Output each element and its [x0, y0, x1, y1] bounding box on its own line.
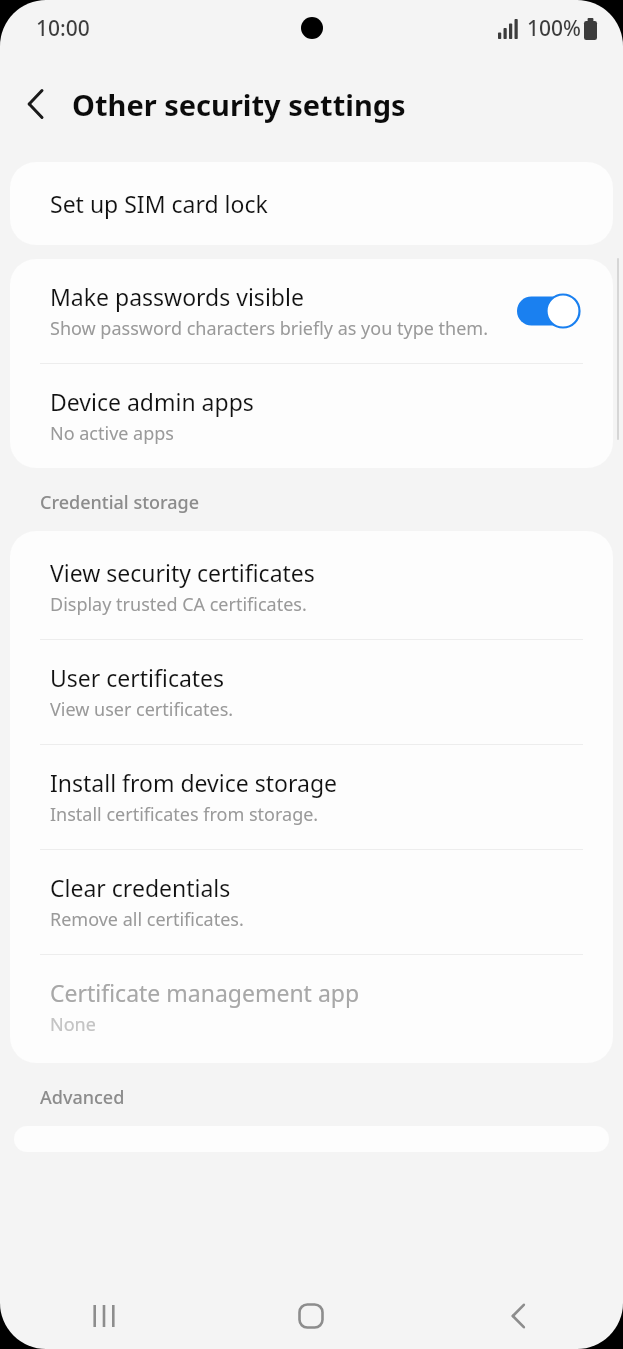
- staticText: Install certificates from storage.: [50, 802, 319, 827]
- staticText: None: [50, 1012, 96, 1037]
- staticText: Device admin apps: [50, 386, 254, 417]
- button[interactable]: Make passwords visible: [10, 259, 613, 363]
- staticText: 10:00: [36, 14, 90, 43]
- button[interactable]: Back: [415, 1283, 623, 1349]
- staticText: Remove all certificates.: [50, 907, 244, 932]
- staticText: Clear credentials: [50, 872, 231, 903]
- staticText: Set up SIM card lock: [50, 188, 268, 219]
- button[interactable]: View security certificates: [10, 531, 613, 639]
- button[interactable]: Install from device storage: [10, 745, 613, 849]
- staticText: Credential storage: [40, 490, 200, 515]
- staticText: Advanced: [40, 1085, 125, 1110]
- staticText: Certificate management app: [50, 977, 360, 1008]
- staticText: User certificates: [50, 662, 225, 693]
- button[interactable]: Recent apps: [0, 1283, 207, 1349]
- staticText: Other security settings: [72, 85, 406, 124]
- button[interactable]: Make passwords visible: [517, 293, 581, 329]
- staticText: View security certificates: [50, 557, 315, 588]
- button[interactable]: Clear credentials: [10, 850, 613, 954]
- staticText: Show password characters briefly as you …: [50, 316, 488, 341]
- button[interactable]: Navigate up: [0, 68, 72, 140]
- staticText: View user certificates.: [50, 697, 234, 722]
- staticText: Display trusted CA certificates.: [50, 592, 307, 617]
- button[interactable]: Certificate management app: [10, 955, 613, 1063]
- button[interactable]: Set up SIM card lock: [10, 162, 613, 245]
- button[interactable]: Home: [207, 1283, 415, 1349]
- staticText: Make passwords visible: [50, 281, 304, 312]
- button[interactable]: Device admin apps: [10, 364, 613, 468]
- staticText: Install from device storage: [50, 767, 337, 798]
- staticText: No active apps: [50, 421, 174, 446]
- button[interactable]: User certificates: [10, 640, 613, 744]
- staticText: 100%: [527, 14, 581, 43]
